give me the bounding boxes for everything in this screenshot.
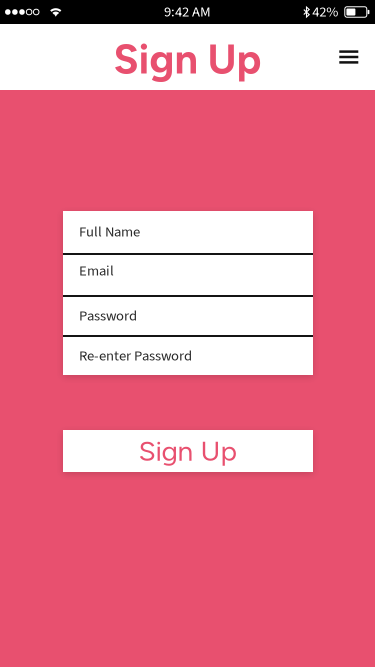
- staticText: Re-enter Password: [79, 346, 192, 366]
- button[interactable]: Re-enter Password: [63, 337, 313, 375]
- button[interactable]: Email: [63, 255, 313, 297]
- staticText: Full Name: [79, 222, 140, 242]
- staticText: Sign Up: [113, 34, 261, 84]
- staticText: 42%: [312, 2, 338, 22]
- button[interactable]: Password: [63, 297, 313, 337]
- button[interactable]: Sign Up: [62, 430, 312, 472]
- staticText: Sign Up: [138, 434, 237, 468]
- button[interactable]: Full Name: [63, 211, 313, 255]
- staticText: Email: [79, 261, 114, 281]
- staticText: Password: [79, 306, 137, 326]
- button[interactable]: Menu: [324, 35, 373, 78]
- staticText: 9:42 AM: [164, 2, 211, 22]
